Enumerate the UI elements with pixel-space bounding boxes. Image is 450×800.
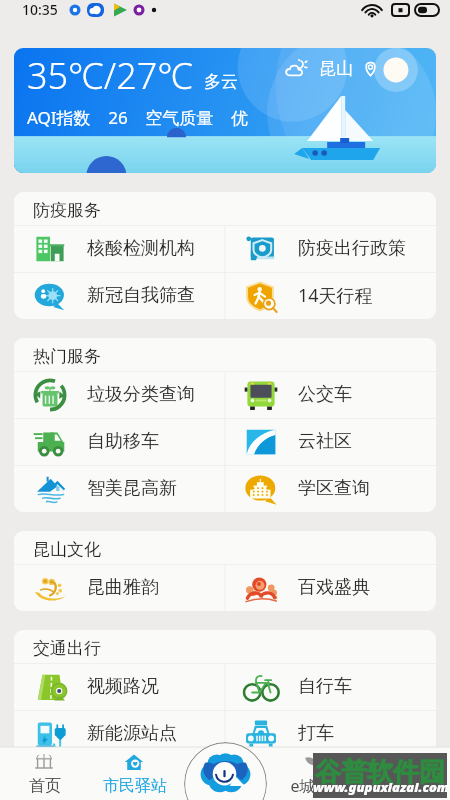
- button[interactable]: 百戏盛典: [225, 564, 436, 611]
- button[interactable]: 自行车: [225, 663, 436, 710]
- staticText: 市民驿站: [103, 776, 167, 796]
- staticText: 新冠自我筛查: [87, 284, 195, 307]
- staticText: 昆曲雅韵: [87, 576, 159, 599]
- button[interactable]: 视频路况: [14, 663, 225, 710]
- staticText: 核酸检测机构: [87, 237, 195, 260]
- staticText: 百戏盛典: [298, 576, 370, 599]
- button[interactable]: 新能源站点: [14, 710, 225, 757]
- staticText: 防疫出行政策: [298, 237, 406, 260]
- staticText: 自行车: [298, 675, 352, 698]
- button[interactable]: 首页: [0, 747, 90, 800]
- staticText: 14天行程: [298, 283, 373, 308]
- staticText: 垃圾分类查询: [87, 383, 195, 406]
- button[interactable]: 核酸检测机构: [14, 225, 225, 272]
- button[interactable]: e城e家: [270, 747, 360, 800]
- button[interactable]: 防疫出行政策: [225, 225, 436, 272]
- button[interactable]: 35℃/27℃: [14, 48, 436, 173]
- staticText: 视频路况: [87, 675, 159, 698]
- staticText: 35℃/27℃: [27, 51, 193, 100]
- button[interactable]: 14天行程: [225, 272, 436, 319]
- staticText: 昆山: [319, 58, 353, 79]
- staticText: 昆山文化: [33, 539, 101, 560]
- staticText: 公交车: [298, 383, 352, 406]
- staticText: 热门服务: [33, 346, 101, 367]
- button[interactable]: 云社区: [225, 418, 436, 465]
- staticText: 我的: [389, 776, 421, 796]
- button[interactable]: 昆曲雅韵: [14, 564, 225, 611]
- button[interactable]: 学区查询: [225, 465, 436, 512]
- staticText: www.gupuxlazal.com: [313, 778, 447, 796]
- staticText: 云社区: [298, 430, 352, 453]
- staticText: 防疫服务: [33, 200, 101, 221]
- button[interactable]: 自助移车: [14, 418, 225, 465]
- button[interactable]: 智美昆高新: [14, 465, 225, 512]
- staticText: 打车: [298, 722, 334, 745]
- staticText: 学区查询: [298, 477, 370, 500]
- staticText: 首页: [29, 776, 61, 796]
- staticText: 自助移车: [87, 430, 159, 453]
- staticText: 多云: [204, 71, 238, 92]
- staticText: AQI指数 26 空气质量 优: [27, 106, 249, 129]
- staticText: 交通出行: [33, 638, 101, 659]
- staticText: 10:35: [22, 0, 58, 19]
- button[interactable]: 市民驿站: [90, 747, 180, 800]
- button[interactable]: 垃圾分类查询: [14, 371, 225, 418]
- staticText: 谷普软件园: [315, 756, 445, 789]
- staticText: 新能源站点: [87, 722, 177, 745]
- staticText: 智美昆高新: [87, 477, 177, 500]
- button[interactable]: 打车: [225, 710, 436, 757]
- button[interactable]: 新冠自我筛查: [14, 272, 225, 319]
- button[interactable]: 我的: [360, 747, 450, 800]
- staticText: e城e家: [290, 775, 341, 797]
- button[interactable]: 智能助手: [184, 742, 267, 800]
- button[interactable]: 公交车: [225, 371, 436, 418]
